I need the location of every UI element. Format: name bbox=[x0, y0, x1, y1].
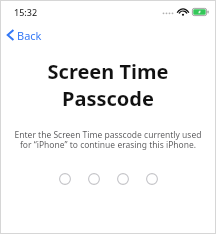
staticText: Enter the Screen Time passcode currently… bbox=[14, 129, 202, 151]
staticText: Passcode bbox=[0, 85, 216, 112]
staticText: 15:32 bbox=[14, 6, 38, 18]
staticText: Screen Time bbox=[0, 58, 216, 85]
staticText: Back bbox=[17, 28, 42, 43]
button[interactable]: Back bbox=[4, 24, 45, 46]
